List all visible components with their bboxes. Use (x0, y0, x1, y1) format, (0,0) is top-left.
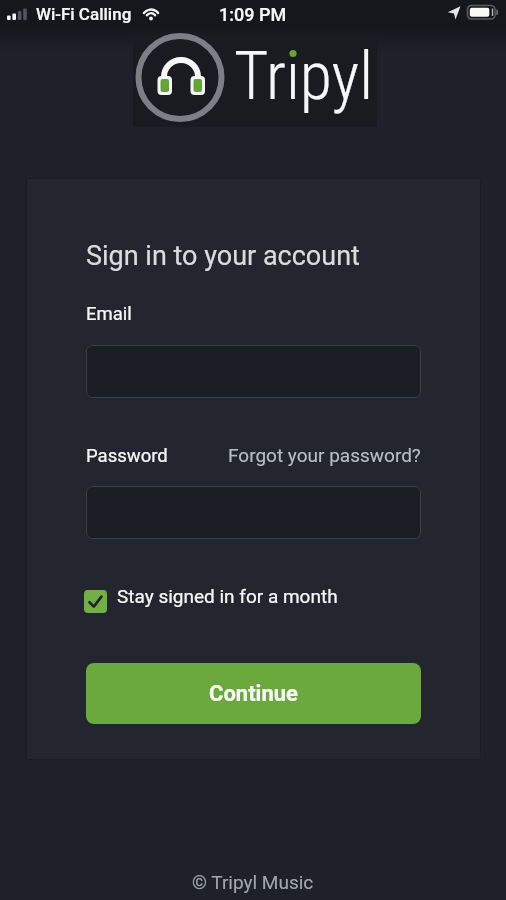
button[interactable] (86, 345, 421, 398)
staticText: Email (86, 303, 132, 325)
button[interactable] (86, 486, 421, 539)
staticText: 1:09 PM (219, 4, 287, 25)
staticText: Continue (209, 681, 298, 707)
staticText: Wi-Fi Calling (36, 4, 132, 24)
button[interactable] (133, 33, 377, 127)
staticText: Trıpyl (234, 38, 374, 115)
staticText: Forgot your password? (228, 444, 421, 466)
staticText: Password (86, 445, 168, 467)
staticText: © Tripyl Music (192, 871, 314, 893)
button[interactable]: Continue (86, 663, 421, 724)
staticText: Sign in to your account (86, 240, 360, 272)
button[interactable]: Stay signed in for a month (84, 585, 344, 615)
button[interactable]: Forgot your password? (228, 444, 421, 466)
staticText: Stay signed in for a month (117, 585, 338, 607)
